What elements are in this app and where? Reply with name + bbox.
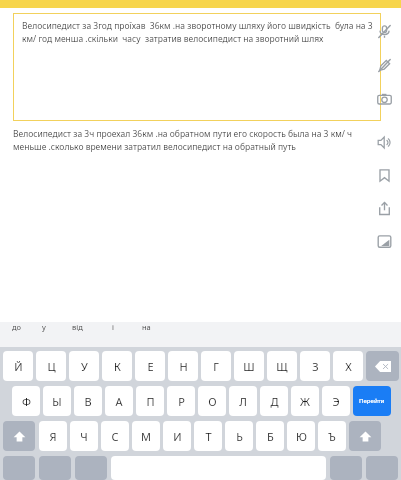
staticText: Ш (243, 359, 255, 374)
button[interactable]: до (12, 322, 42, 332)
button[interactable]: Microphone off (369, 16, 399, 46)
button[interactable]: і (112, 322, 142, 332)
staticText: Я (49, 429, 57, 444)
button[interactable]: Dot (330, 456, 362, 480)
staticText: Ь (236, 429, 243, 444)
button[interactable]: Э (322, 386, 350, 416)
button[interactable]: Listen (369, 127, 399, 157)
button[interactable]: П (136, 386, 164, 416)
button[interactable]: Numbers (3, 456, 35, 480)
button[interactable]: А (105, 386, 133, 416)
button[interactable]: Г (201, 351, 231, 381)
button[interactable]: Щ (267, 351, 297, 381)
button[interactable]: О (198, 386, 226, 416)
staticText: Ю (296, 429, 307, 444)
staticText: К (114, 359, 121, 374)
button[interactable]: У (69, 351, 99, 381)
button[interactable]: В (74, 386, 102, 416)
button[interactable]: З (300, 351, 330, 381)
staticText: Г (213, 359, 219, 374)
button[interactable]: Ъ (318, 421, 346, 451)
staticText: Ч (80, 429, 88, 444)
staticText: Ф (22, 394, 31, 409)
staticText: Ж (300, 394, 310, 409)
button[interactable]: Н (168, 351, 198, 381)
button[interactable]: Handwriting off (369, 50, 399, 80)
button[interactable]: Ь (225, 421, 253, 451)
staticText: у (42, 322, 46, 332)
button[interactable]: Л (229, 386, 257, 416)
staticText: З (312, 359, 319, 374)
button[interactable]: на (142, 322, 172, 332)
staticText: до (12, 322, 22, 332)
button[interactable]: Ц (36, 351, 66, 381)
button[interactable]: Т (194, 421, 222, 451)
button[interactable]: Shift (3, 421, 35, 451)
button[interactable]: Д (260, 386, 288, 416)
button[interactable]: К (102, 351, 132, 381)
button[interactable]: Shift (349, 421, 381, 451)
button[interactable]: Ф (12, 386, 40, 416)
staticText: Н (179, 359, 188, 374)
staticText: на (142, 322, 151, 332)
staticText: Велосипедист за 3год проїхав 36км .на зв… (22, 20, 375, 45)
button[interactable]: Ю (287, 421, 315, 451)
button[interactable]: Й (3, 351, 33, 381)
staticText: Ъ (328, 429, 336, 444)
button[interactable]: Hide keyboard (366, 456, 398, 480)
staticText: від (72, 322, 83, 332)
button[interactable]: Б (256, 421, 284, 451)
staticText: Л (239, 394, 247, 409)
button[interactable]: Р (167, 386, 195, 416)
staticText: Р (178, 394, 185, 409)
staticText: Велосипедист за 3ч проехал 36км .на обра… (13, 128, 359, 153)
button[interactable]: у (42, 322, 72, 332)
button[interactable]: Ж (291, 386, 319, 416)
button[interactable]: Ч (70, 421, 98, 451)
button[interactable]: Ы (43, 386, 71, 416)
button[interactable]: Велосипедист за 3год проїхав 36км .на зв… (13, 13, 381, 121)
staticText: Б (267, 429, 274, 444)
button[interactable]: Е (135, 351, 165, 381)
staticText: і (112, 322, 114, 332)
button[interactable]: Camera input (369, 84, 399, 114)
staticText: О (208, 394, 217, 409)
button[interactable]: Я (39, 421, 67, 451)
staticText: П (146, 394, 155, 409)
button[interactable]: Emoji (39, 456, 71, 480)
staticText: Е (147, 359, 154, 374)
staticText: Х (345, 359, 352, 374)
staticText: И (173, 429, 182, 444)
button[interactable]: Перейти (353, 386, 391, 416)
button[interactable]: Ш (234, 351, 264, 381)
staticText: Перейти (359, 397, 385, 405)
button[interactable]: Save (369, 160, 399, 190)
staticText: А (115, 394, 123, 409)
button[interactable]: від (72, 322, 112, 332)
button[interactable]: И (163, 421, 191, 451)
staticText: Ц (47, 359, 56, 374)
staticText: Щ (276, 359, 288, 374)
button[interactable]: С (101, 421, 129, 451)
staticText: Т (205, 429, 212, 444)
staticText: М (141, 429, 151, 444)
button[interactable]: Share (369, 193, 399, 223)
button[interactable]: Х (333, 351, 363, 381)
staticText: Ы (52, 394, 62, 409)
staticText: Й (14, 359, 23, 374)
staticText: В (84, 394, 92, 409)
button[interactable]: Fullscreen (369, 226, 399, 256)
staticText: С (111, 429, 119, 444)
button[interactable]: Backspace (366, 351, 399, 381)
button[interactable]: Language (75, 456, 107, 480)
staticText: Э (332, 394, 340, 409)
staticText: Д (270, 394, 279, 409)
button[interactable]: М (132, 421, 160, 451)
staticText: У (81, 359, 88, 374)
